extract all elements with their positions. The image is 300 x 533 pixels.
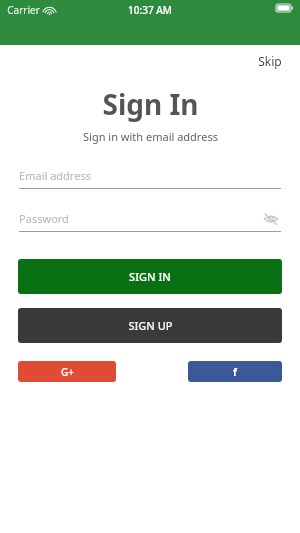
button[interactable]: Show password <box>261 209 281 228</box>
staticText: Sign In <box>102 85 199 123</box>
staticText: f <box>233 365 237 379</box>
staticText: 10:37 AM <box>128 3 172 17</box>
staticText: Skip <box>258 53 282 69</box>
button[interactable]: SIGN IN <box>18 259 282 294</box>
staticText: SIGN UP <box>128 318 173 333</box>
staticText: G+ <box>61 365 74 379</box>
button[interactable]: Skip <box>240 45 300 77</box>
button[interactable]: Password <box>19 209 281 232</box>
staticText: Password <box>19 211 69 226</box>
staticText: Sign in with email address <box>83 129 218 144</box>
staticText: Carrier <box>7 3 40 17</box>
staticText: SIGN IN <box>129 269 171 284</box>
staticText: Email address <box>19 168 91 183</box>
button[interactable]: G+ <box>18 361 116 382</box>
button[interactable]: Email address <box>19 166 281 189</box>
button[interactable]: f <box>188 361 282 382</box>
button[interactable]: SIGN UP <box>18 308 282 343</box>
